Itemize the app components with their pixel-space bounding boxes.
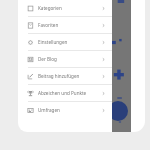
staticText: Abzeichen und Punkte (38, 90, 101, 96)
button[interactable]: Kategorien (18, 0, 112, 16)
button[interactable]: Einstellungen (18, 34, 112, 50)
staticText: Umfragen (38, 107, 101, 113)
button[interactable]: Umfragen (18, 102, 112, 118)
button[interactable]: Der Blog (18, 51, 112, 67)
button[interactable]: Add (108, 101, 128, 121)
button[interactable]: Favoriten (18, 17, 112, 33)
staticText: Kategorien (38, 5, 101, 11)
staticText: Favoriten (38, 22, 101, 28)
staticText: Der Blog (38, 56, 101, 62)
button[interactable]: Abzeichen und Punkte (18, 85, 112, 101)
staticText: Einstellungen (38, 39, 101, 45)
button[interactable]: Beitrag hinzufügen (18, 68, 112, 84)
staticText: Beitrag hinzufügen (38, 73, 101, 79)
